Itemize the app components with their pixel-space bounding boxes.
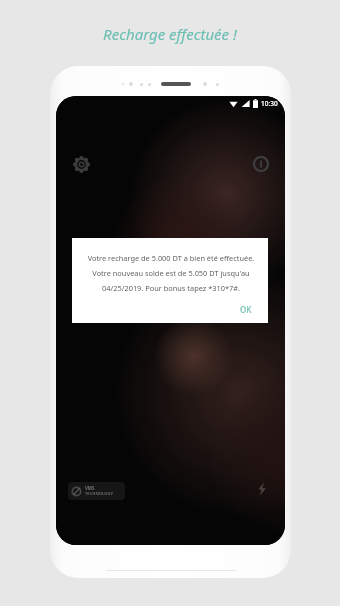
staticText: 10:30 [261, 99, 278, 108]
staticText: VMS [85, 485, 95, 491]
staticText: TECHNOLOGY [85, 491, 113, 497]
button[interactable]: Settings [67, 150, 95, 178]
button[interactable]: OK [234, 301, 258, 318]
button[interactable]: VMS Technology [68, 482, 125, 500]
staticText: Votre recharge de 5.000 DT a bien été ef… [84, 253, 258, 293]
staticText: OK [240, 304, 252, 315]
button[interactable]: Info [247, 150, 275, 178]
button[interactable]: Flash [252, 479, 272, 499]
staticText: Recharge effectuée ! [103, 24, 237, 44]
